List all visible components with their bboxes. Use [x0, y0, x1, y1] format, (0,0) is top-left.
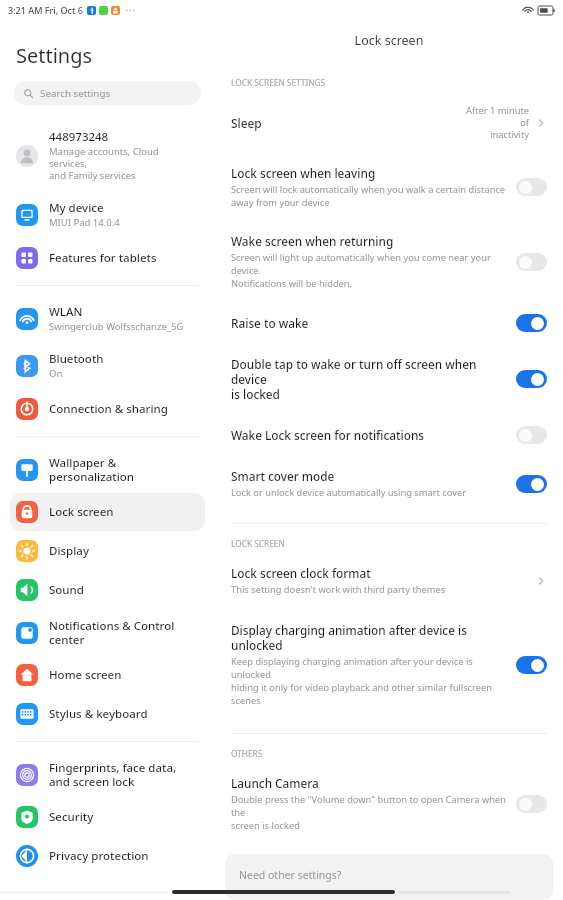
staticText: Sound [49, 582, 84, 598]
staticText: Sleep [231, 115, 262, 131]
staticText: LOCK SCREEN SETTINGS [231, 77, 326, 88]
staticText: Wallpaper & personalization [49, 455, 135, 484]
staticText: MIUI Pad 14.0.4 [49, 216, 120, 229]
staticText: Connection & sharing [49, 401, 168, 417]
staticText: Screen will lock automatically when you … [231, 183, 506, 209]
staticText: 3:21 AM Fri, Oct 6 [8, 4, 83, 16]
button[interactable]: Raise to wake [215, 304, 563, 342]
button[interactable]: Connection & sharing [10, 390, 205, 428]
staticText: Lock screen when leaving [231, 165, 376, 181]
staticText: Fingerprints, face data, and screen lock [49, 760, 177, 789]
staticText: Lock screen [215, 32, 563, 49]
button[interactable]: Notifications & Control center [10, 610, 205, 655]
button[interactable]: Fingerprints, face data, and screen lock [10, 752, 205, 797]
staticText: Double tap to wake or turn off screen wh… [231, 356, 506, 402]
staticText: Double press the "Volume down" button to… [231, 793, 506, 832]
button[interactable]: Smart cover mode [215, 458, 563, 509]
staticText: Screen will light up automatically when … [231, 251, 506, 290]
staticText: Launch Camera [231, 775, 319, 791]
staticText: Lock screen clock format [231, 565, 371, 581]
button[interactable]: On [516, 314, 547, 332]
button[interactable]: Off [516, 795, 547, 813]
button[interactable]: Features for tablets [10, 239, 205, 277]
staticText: Security [49, 809, 94, 825]
staticText: Swingerclub Wolfsschanze_5G [49, 320, 184, 333]
button[interactable]: On [516, 370, 547, 388]
staticText: Bluetooth [49, 351, 104, 367]
button[interactable]: Wake Lock screen for notifications [215, 416, 563, 454]
button[interactable]: My device [10, 192, 205, 237]
button[interactable]: Display [10, 532, 205, 570]
button[interactable]: Sleep [215, 94, 563, 151]
button[interactable]: On [516, 656, 547, 674]
staticText: WLAN [49, 304, 83, 320]
button[interactable]: Lock screen [10, 493, 205, 531]
button[interactable]: Search settings [14, 81, 201, 105]
staticText: Privacy protection [49, 848, 149, 864]
button[interactable]: Launch Camera [215, 765, 563, 842]
button[interactable]: Lock screen when leaving [215, 155, 563, 219]
button[interactable]: Security [10, 798, 205, 836]
staticText: Need other settings? [239, 868, 342, 882]
button[interactable]: Double tap to wake or turn off screen wh… [215, 346, 563, 412]
staticText: Lock screen [49, 504, 114, 520]
button[interactable]: Sound [10, 571, 205, 609]
staticText: Search settings [40, 87, 111, 100]
staticText: 448973248 [49, 129, 109, 145]
staticText: Wake screen when returning [231, 233, 394, 249]
staticText: Raise to wake [231, 315, 309, 331]
button[interactable]: Wake screen when returning [215, 223, 563, 300]
staticText: Notifications & Control center [49, 618, 175, 647]
button[interactable]: Off [516, 253, 547, 271]
staticText: My device [49, 200, 104, 216]
button[interactable]: Off [516, 178, 547, 196]
staticText: After 1 minute of inactivity [459, 104, 529, 141]
button[interactable]: 448973248 [10, 121, 205, 190]
staticText: Manage accounts, Cloud services, and Fam… [49, 145, 197, 182]
staticText: LOCK SCREEN [231, 538, 285, 549]
staticText: Home screen [49, 667, 122, 683]
button[interactable]: Privacy protection [10, 837, 205, 875]
button[interactable]: WLAN [10, 296, 205, 341]
staticText: Wake Lock screen for notifications [231, 427, 425, 443]
staticText: Display charging animation after device … [231, 622, 467, 653]
button[interactable]: Home screen [10, 656, 205, 694]
staticText: OTHERS [231, 748, 263, 759]
staticText: Display [49, 543, 89, 559]
button[interactable]: Display charging animation after device … [215, 612, 563, 717]
staticText: Stylus & keyboard [49, 706, 148, 722]
button[interactable]: Wallpaper & personalization [10, 447, 205, 492]
staticText: This setting doesn't work with third par… [231, 583, 446, 596]
button[interactable]: Lock screen clock format [215, 555, 563, 606]
staticText: On [49, 367, 63, 380]
staticText: Lock or unlock device automatically usin… [231, 486, 466, 499]
button[interactable]: Bluetooth [10, 343, 205, 388]
staticText: Smart cover mode [231, 468, 335, 484]
staticText: Keep displaying charging animation after… [231, 655, 506, 707]
button[interactable]: Stylus & keyboard [10, 695, 205, 733]
staticText: Features for tablets [49, 250, 157, 266]
button[interactable]: On [516, 475, 547, 493]
staticText: Settings [16, 42, 93, 69]
button[interactable]: Off [516, 426, 547, 444]
